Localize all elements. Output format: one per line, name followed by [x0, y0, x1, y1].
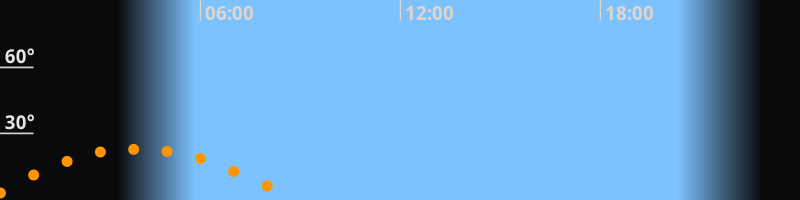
staticText: 30° — [5, 110, 35, 134]
staticText: 18:00 — [605, 0, 654, 25]
button[interactable]: Sun elevation chart — [0, 0, 800, 200]
staticText: 12:00 — [405, 0, 454, 25]
staticText: 60° — [5, 44, 35, 68]
staticText: 06:00 — [205, 0, 254, 25]
